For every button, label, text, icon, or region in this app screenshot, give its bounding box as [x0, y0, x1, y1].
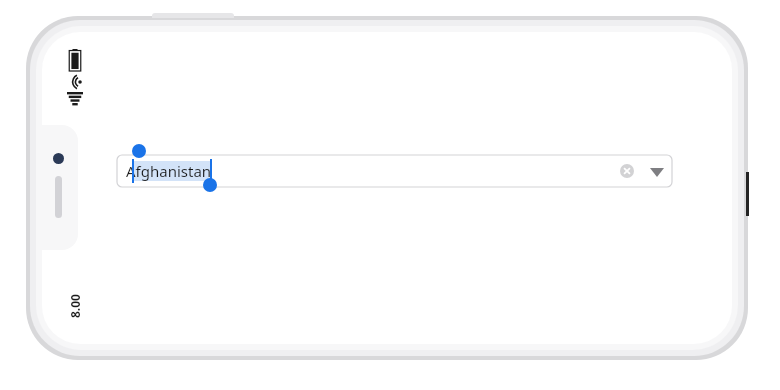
button[interactable]: Clear text [617, 161, 637, 181]
staticText: Afghanistan [126, 161, 212, 181]
button[interactable]: Selection start handle [132, 144, 146, 158]
button[interactable]: Selection end handle [203, 178, 217, 192]
button[interactable] [117, 155, 672, 187]
staticText: 8.00 [67, 294, 83, 318]
button[interactable]: Show suggestions [646, 161, 668, 183]
